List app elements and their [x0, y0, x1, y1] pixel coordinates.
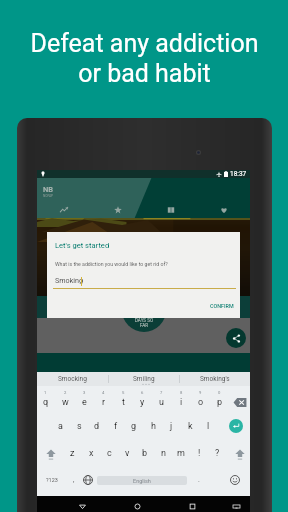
button[interactable]: English: [97, 476, 187, 485]
staticText: Let's get started: [55, 241, 110, 250]
staticText: 1: [44, 390, 47, 395]
staticText: m: [177, 448, 185, 459]
staticText: Smiling: [133, 375, 155, 383]
button[interactable]: Backspace: [233, 396, 247, 409]
button[interactable]: j: [162, 416, 180, 436]
button[interactable]: p: [210, 392, 229, 412]
staticText: 8: [180, 390, 183, 395]
staticText: 18:37: [230, 170, 247, 178]
staticText: a: [58, 421, 63, 432]
staticText: What is the addiction you would like to …: [55, 261, 168, 267]
staticText: v: [125, 448, 130, 459]
button[interactable]: h: [144, 416, 162, 436]
button[interactable]: d: [88, 416, 106, 436]
button[interactable]: c: [100, 443, 118, 463]
button[interactable]: ,: [67, 473, 81, 487]
staticText: ?: [215, 448, 220, 459]
staticText: h: [151, 421, 156, 432]
staticText: i: [180, 397, 183, 408]
staticText: 2: [64, 390, 67, 395]
staticText: x: [89, 448, 94, 459]
staticText: Defeat any addiction or bad habit: [30, 29, 259, 88]
button[interactable]: Journal: [144, 203, 197, 217]
button[interactable]: Smiling: [109, 372, 179, 386]
staticText: 4: [102, 390, 105, 395]
staticText: k: [188, 421, 193, 432]
staticText: ?123: [46, 477, 58, 483]
button[interactable]: m: [172, 443, 190, 463]
button[interactable]: n: [154, 443, 172, 463]
button[interactable]: Home: [132, 501, 143, 512]
button[interactable]: ?123: [39, 473, 65, 487]
staticText: b: [142, 448, 148, 459]
button[interactable]: Achievements: [91, 203, 144, 217]
staticText: f: [114, 421, 118, 432]
staticText: t: [122, 397, 125, 408]
staticText: l: [207, 421, 210, 432]
button[interactable]: a: [51, 416, 69, 436]
staticText: ,: [73, 476, 75, 484]
button[interactable]: Shift: [44, 447, 58, 461]
button[interactable]: Share: [226, 328, 246, 348]
button[interactable]: Motivation: [197, 203, 250, 217]
button[interactable]: o: [191, 392, 210, 412]
button[interactable]: z: [63, 443, 81, 463]
staticText: n: [161, 448, 166, 459]
button[interactable]: l: [199, 416, 217, 436]
button[interactable]: g: [125, 416, 143, 436]
button[interactable]: i: [172, 392, 191, 412]
staticText: Smocking: [58, 375, 87, 383]
button[interactable]: Recent apps: [187, 501, 198, 512]
button[interactable]: Enter: [229, 419, 243, 433]
staticText: 7: [160, 390, 163, 395]
button[interactable]: k: [181, 416, 199, 436]
button[interactable]: Hide keyboard: [231, 501, 242, 512]
staticText: s: [77, 421, 82, 432]
staticText: o: [198, 397, 204, 408]
button[interactable]: u: [152, 392, 171, 412]
button[interactable]: CONFIRM: [203, 296, 241, 316]
button[interactable]: e: [75, 392, 94, 412]
staticText: 9: [199, 390, 202, 395]
button[interactable]: r: [94, 392, 113, 412]
button[interactable]: Emoji: [230, 475, 240, 485]
staticText: NOFAP: [43, 194, 54, 198]
staticText: Smoking's: [200, 375, 230, 383]
button[interactable]: b: [136, 443, 154, 463]
button[interactable]: t: [114, 392, 133, 412]
staticText: q: [43, 397, 49, 408]
button[interactable]: f: [107, 416, 125, 436]
button[interactable]: Back: [77, 501, 88, 512]
staticText: NB: [43, 185, 54, 194]
button[interactable]: s: [70, 416, 88, 436]
button[interactable]: Smocking: [37, 372, 108, 386]
button[interactable]: [122, 288, 166, 332]
button[interactable]: x: [82, 443, 100, 463]
button[interactable]: v: [118, 443, 136, 463]
staticText: 5: [122, 390, 125, 395]
button[interactable]: Stats: [37, 203, 91, 217]
staticText: w: [62, 397, 69, 408]
staticText: DAYS SO FAR: [122, 318, 166, 329]
staticText: .: [198, 476, 200, 484]
staticText: r: [102, 397, 106, 408]
button[interactable]: Smoking's: [180, 372, 250, 386]
button[interactable]: ?: [208, 443, 226, 463]
staticText: g: [131, 421, 137, 432]
staticText: CONFIRM: [210, 303, 234, 309]
button[interactable]: !: [190, 443, 208, 463]
button[interactable]: Shift: [233, 447, 247, 461]
button[interactable]: y: [133, 392, 152, 412]
button[interactable]: w: [56, 392, 75, 412]
button[interactable]: q: [36, 392, 55, 412]
staticText: c: [107, 448, 112, 459]
button[interactable]: .: [192, 473, 206, 487]
staticText: 3: [83, 390, 86, 395]
staticText: English: [133, 478, 151, 484]
button[interactable]: Change language: [83, 475, 93, 485]
staticText: u: [159, 397, 164, 408]
staticText: 6: [141, 390, 144, 395]
staticText: z: [70, 448, 75, 459]
staticText: 0: [218, 390, 221, 395]
staticText: e: [82, 397, 87, 408]
